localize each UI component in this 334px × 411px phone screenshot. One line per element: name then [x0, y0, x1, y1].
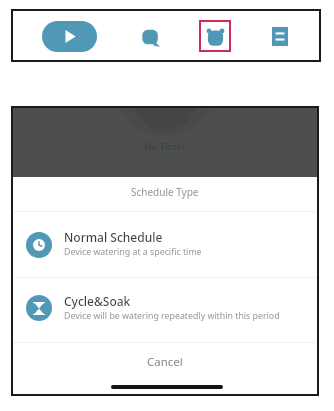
button[interactable]: Schedule: [199, 20, 231, 52]
staticText: Device will be watering repeatedly withi…: [64, 310, 280, 322]
staticText: Cycle&Soak: [64, 293, 131, 309]
staticText: Normal Schedule: [64, 229, 163, 245]
staticText: No Timer: [144, 140, 187, 153]
button[interactable]: Cancel: [13, 343, 317, 385]
button[interactable]: Log: [267, 23, 293, 49]
button[interactable]: Normal Schedule: [13, 212, 317, 277]
button[interactable]: Run: [42, 21, 97, 52]
staticText: Device watering at a specific time: [64, 246, 202, 258]
staticText: Schedule Type: [131, 185, 199, 199]
button[interactable]: Cycle&Soak: [13, 278, 317, 342]
button[interactable]: Watering: [138, 25, 163, 50]
staticText: Cancel: [147, 354, 183, 370]
